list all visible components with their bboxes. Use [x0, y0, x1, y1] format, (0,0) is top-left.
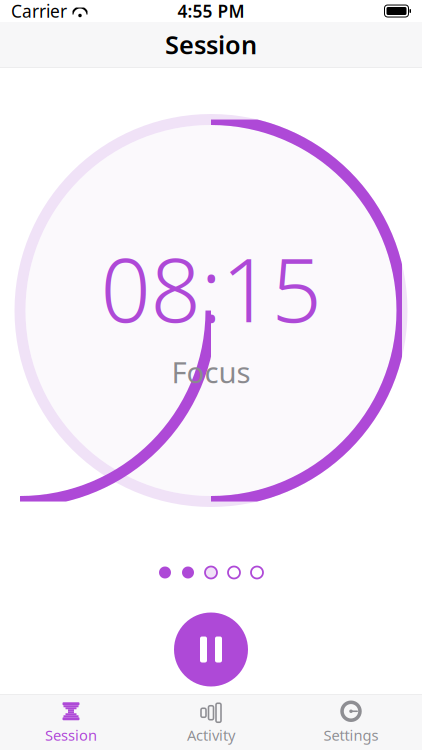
button[interactable]: Settings: [281, 696, 421, 748]
staticText: 4:55 PM: [177, 0, 244, 22]
button[interactable]: Pause: [174, 612, 248, 686]
staticText: Activity: [187, 725, 235, 745]
staticText: Focus: [171, 352, 250, 391]
staticText: Settings: [323, 725, 378, 745]
staticText: Session: [45, 725, 97, 745]
staticText: 08:15: [100, 230, 321, 346]
button[interactable]: Session: [1, 696, 141, 748]
staticText: Session: [165, 28, 257, 61]
staticText: Carrier: [11, 0, 67, 22]
button[interactable]: Activity: [141, 696, 281, 748]
